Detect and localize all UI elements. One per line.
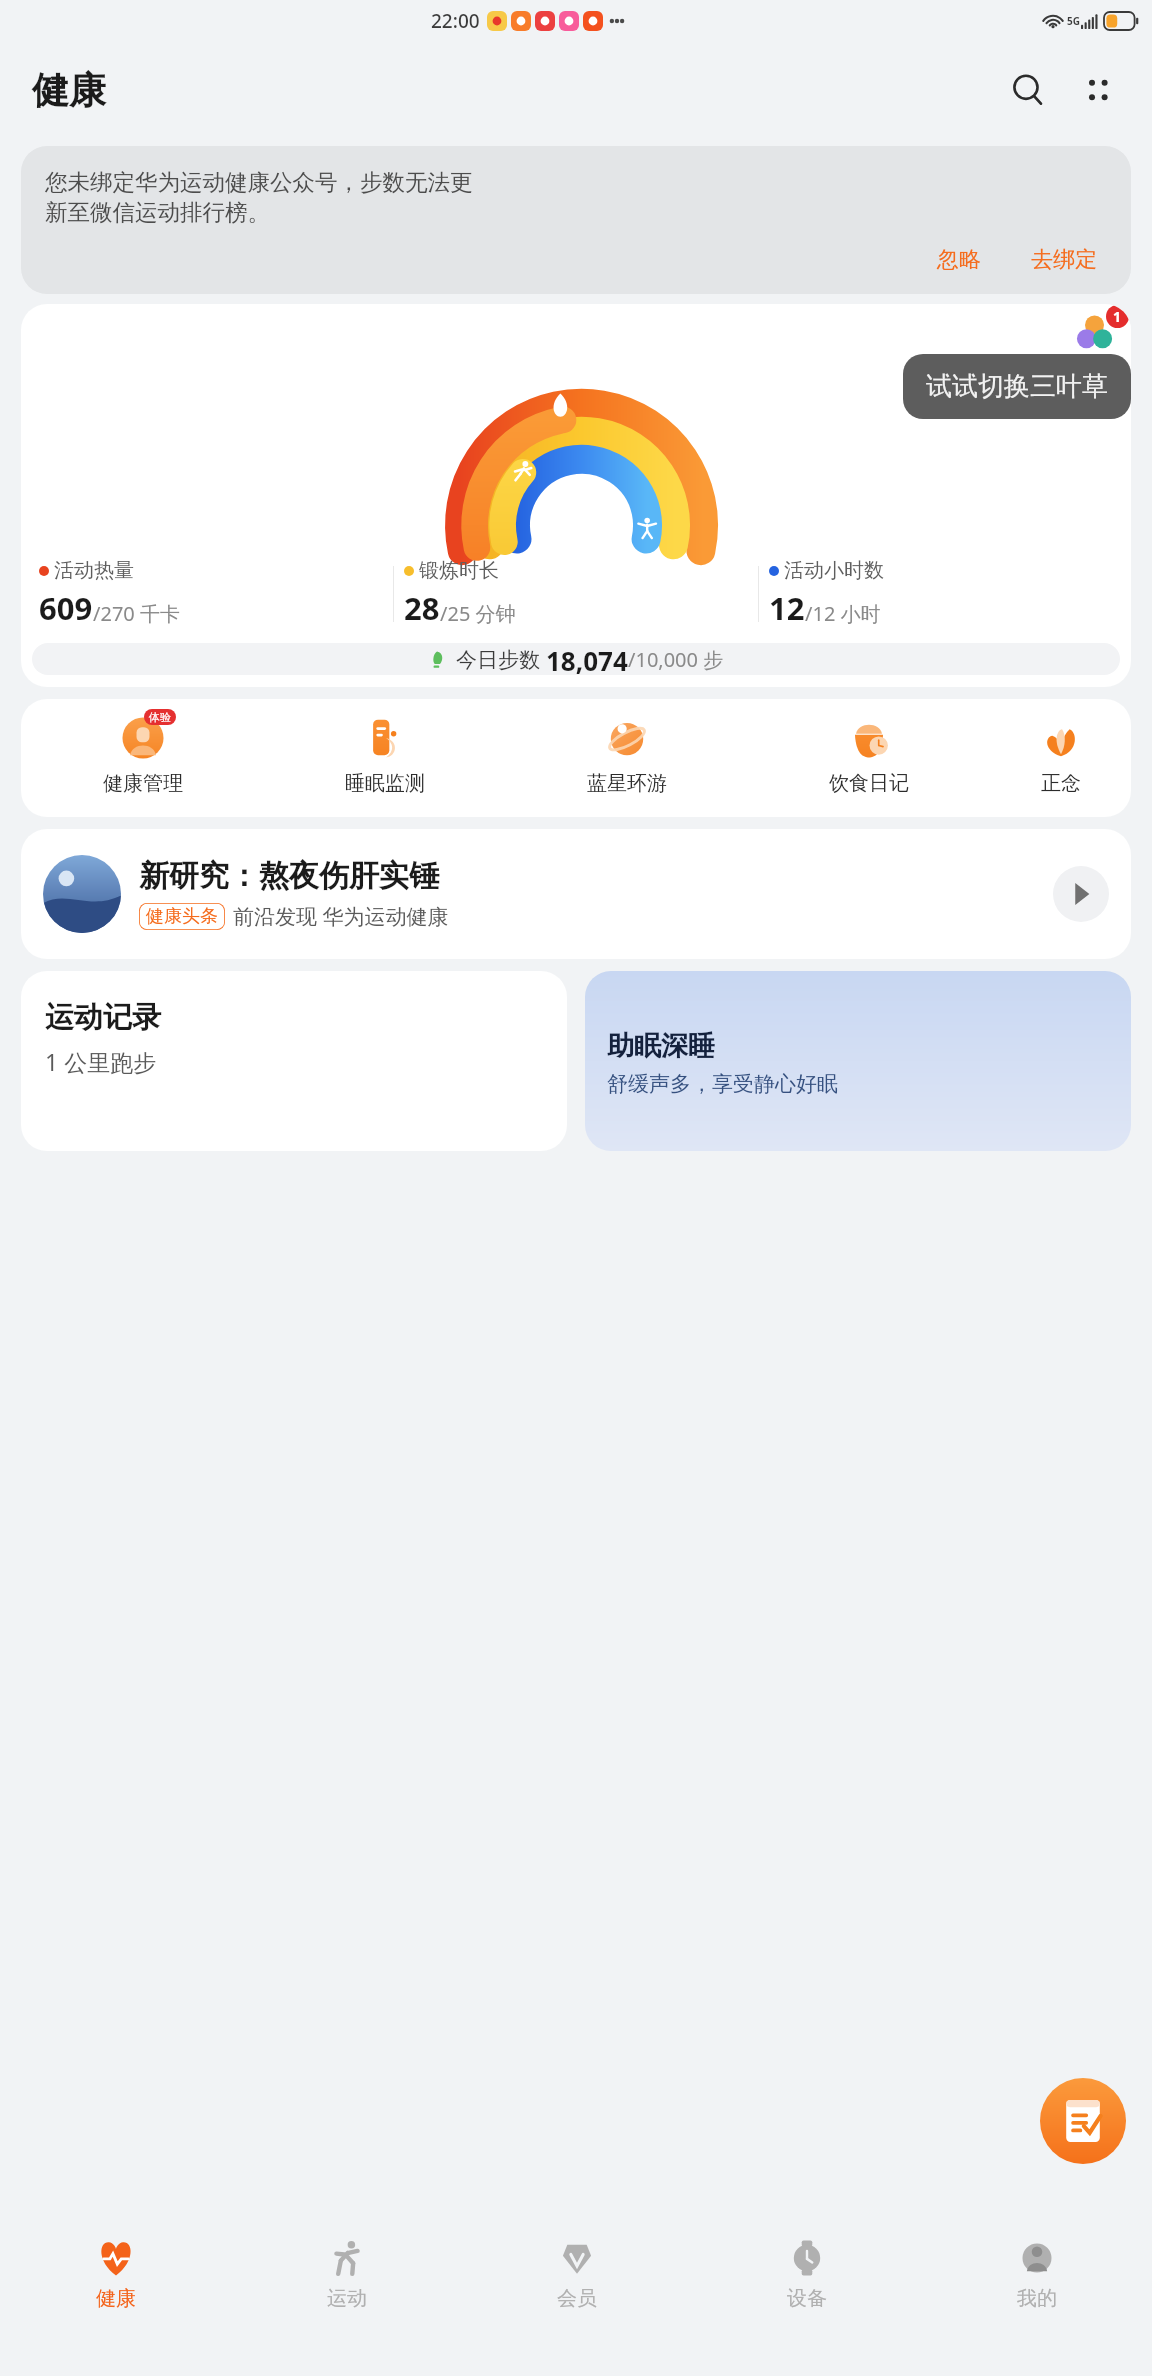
staticText: 饮食日记 <box>829 771 909 796</box>
button[interactable]: 会员 <box>462 2232 692 2315</box>
staticText: 舒缓声多，享受静心好眠 <box>607 1071 838 1097</box>
staticText: 蓝星环游 <box>587 771 667 796</box>
staticText: 锻炼时长 <box>419 558 499 583</box>
button[interactable]: 试试切换三叶草 <box>903 354 1131 419</box>
button[interactable]: 健康 <box>0 2232 231 2315</box>
button[interactable]: 蓝星环游 <box>506 711 748 796</box>
staticText: 忽略 <box>937 246 981 274</box>
button[interactable]: 运动 <box>231 2232 462 2315</box>
staticText: /10,000 步 <box>628 646 724 673</box>
button[interactable]: 饮食日记 <box>748 711 990 796</box>
staticText: 运动记录 <box>45 999 161 1036</box>
button[interactable]: 我的 <box>922 2232 1152 2315</box>
staticText: 5G <box>1067 14 1080 28</box>
button[interactable]: 睡眠监测 <box>264 711 506 796</box>
staticText: 22:00 <box>431 8 480 34</box>
button[interactable]: Play <box>1053 866 1109 922</box>
button[interactable]: 活动热量 <box>29 554 393 633</box>
staticText: /12 小时 <box>805 600 881 627</box>
staticText: 体验 <box>149 710 171 724</box>
staticText: 活动小时数 <box>784 558 884 583</box>
staticText: 会员 <box>557 2286 597 2311</box>
button[interactable]: 活动热量 <box>21 304 1131 687</box>
button[interactable]: 新研究：熬夜伤肝实锤 <box>21 829 1131 959</box>
staticText: 28 <box>404 587 440 629</box>
button[interactable]: 今日步数 <box>32 643 1120 675</box>
button[interactable]: 运动记录 <box>21 971 567 1151</box>
staticText: 运动 <box>327 2286 367 2311</box>
staticText: /270 千卡 <box>93 600 180 627</box>
button[interactable]: 设备 <box>692 2232 922 2315</box>
staticText: 健康头条 <box>146 905 218 928</box>
staticText: 今日步数 <box>456 645 546 674</box>
staticText: 新研究：熬夜伤肝实锤 <box>139 857 439 895</box>
staticText: 1 <box>1113 307 1122 326</box>
button[interactable]: Switch rings <box>1055 304 1131 360</box>
staticText: 健康管理 <box>103 771 183 796</box>
staticText: 活动热量 <box>54 558 134 583</box>
staticText: 12 <box>769 587 805 629</box>
staticText: 健康 <box>32 67 106 114</box>
staticText: 609 <box>39 587 93 629</box>
button[interactable]: 正念 <box>990 711 1131 796</box>
staticText: 1 公里跑步 <box>45 1046 157 1077</box>
staticText: 去绑定 <box>1031 246 1097 274</box>
staticText: /25 分钟 <box>440 600 516 627</box>
staticText: 助眠深睡 <box>607 1029 715 1063</box>
button[interactable]: 体验 <box>21 711 264 796</box>
button[interactable]: 去绑定 <box>1021 240 1107 280</box>
staticText: 前沿发现 华为运动健康 <box>233 902 449 931</box>
button[interactable]: 活动小时数 <box>759 554 1123 633</box>
button[interactable]: 您未绑定华为运动健康公众号，步数无法更 新至微信运动排行榜。 <box>21 146 1131 294</box>
staticText: 18,074 <box>546 643 628 675</box>
button[interactable]: Search <box>1000 62 1056 118</box>
button[interactable]: More options <box>1070 62 1126 118</box>
staticText: 正念 <box>1041 771 1081 796</box>
staticText: 试试切换三叶草 <box>926 370 1108 403</box>
staticText: 您未绑定华为运动健康公众号，步数无法更 新至微信运动排行榜。 <box>45 168 473 226</box>
button[interactable]: 忽略 <box>927 240 991 280</box>
staticText: 我的 <box>1017 2286 1057 2311</box>
staticText: 睡眠监测 <box>345 771 425 796</box>
button[interactable]: Add record <box>1040 2078 1126 2164</box>
staticText: 设备 <box>787 2286 827 2311</box>
button[interactable]: 锻炼时长 <box>394 554 758 633</box>
button[interactable]: 助眠深睡 <box>585 971 1131 1151</box>
staticText: 健康 <box>96 2286 136 2311</box>
